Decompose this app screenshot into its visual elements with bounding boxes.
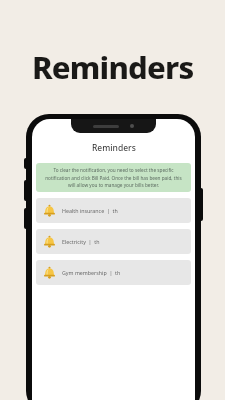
button[interactable]: Reminder bell <box>36 229 191 254</box>
staticText: Electricity | th <box>62 238 100 245</box>
staticText: Reminders <box>32 46 194 88</box>
staticText: Reminders <box>92 142 136 154</box>
button[interactable]: Reminder bell <box>36 198 191 223</box>
staticText: Health insurance | th <box>62 207 118 214</box>
other: Reminder bell <box>43 235 56 248</box>
button[interactable]: To clear the notification, you need to s… <box>36 163 191 192</box>
other: Reminder bell <box>43 204 56 217</box>
staticText: Gym membership | th <box>62 269 121 276</box>
button[interactable]: Reminder bell <box>36 260 191 285</box>
other: Reminder bell <box>43 266 56 279</box>
staticText: To clear the notification, you need to s… <box>41 167 186 188</box>
